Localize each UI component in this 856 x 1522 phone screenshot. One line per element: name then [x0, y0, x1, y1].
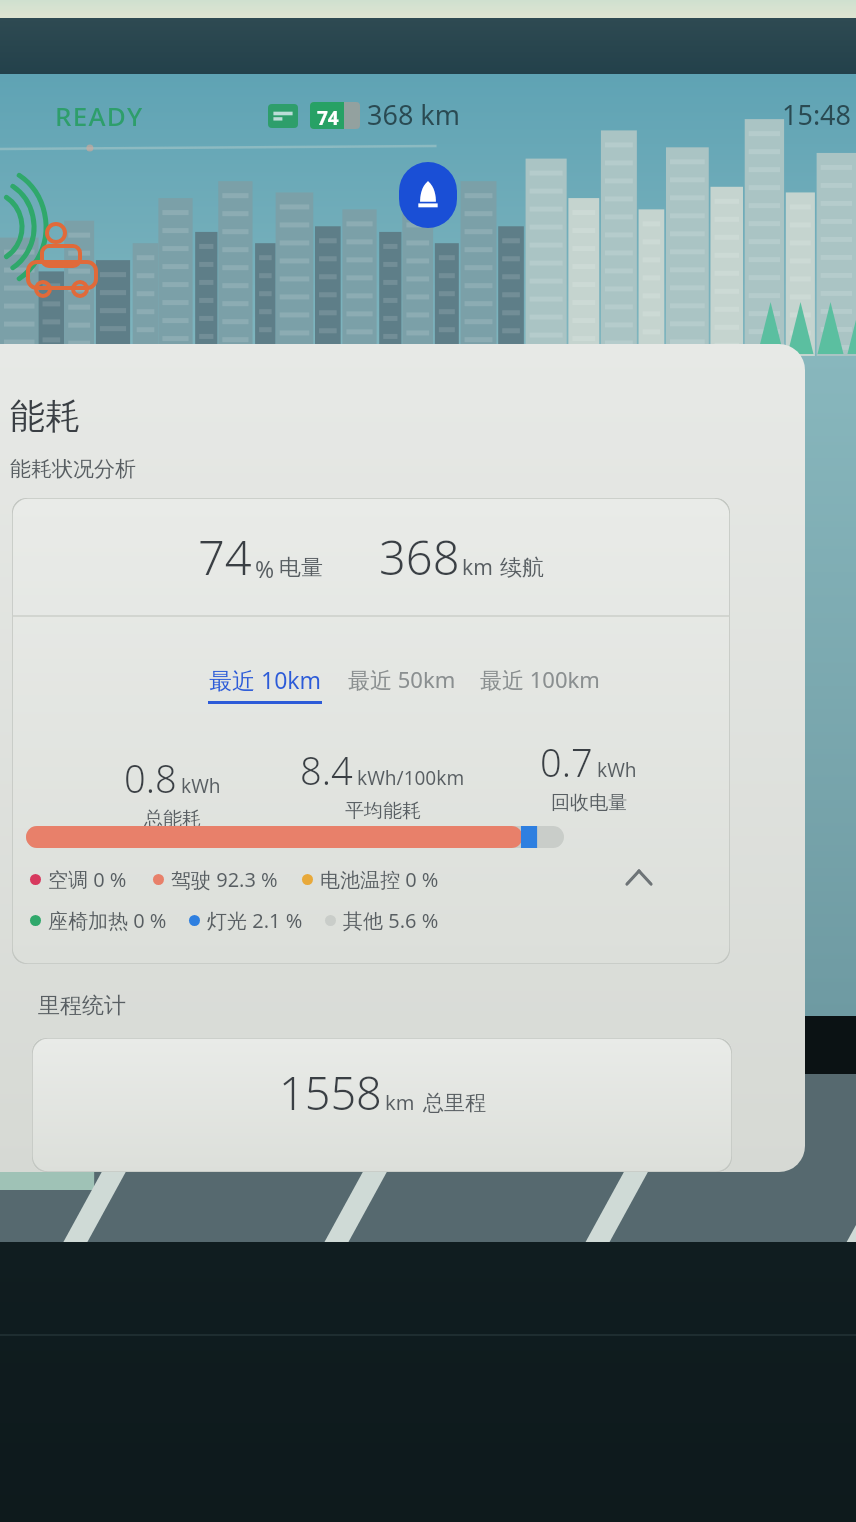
staticText: kWh: [181, 773, 221, 799]
button[interactable]: Current location: [399, 162, 457, 228]
staticText: 其他 5.6 %: [343, 907, 439, 934]
staticText: 74: [317, 105, 339, 129]
staticText: 总里程: [423, 1090, 486, 1116]
staticText: 368 km: [367, 96, 461, 133]
staticText: 15:48: [782, 96, 852, 133]
staticText: 驾驶 92.3 %: [171, 866, 278, 893]
staticText: kWh/100km: [357, 765, 465, 791]
button[interactable]: 最近 10km: [208, 664, 322, 704]
staticText: 1558: [279, 1062, 382, 1123]
staticText: 总能耗: [144, 807, 201, 831]
staticText: 74: [198, 525, 252, 589]
button[interactable]: 最近 100km: [480, 664, 600, 694]
staticText: 续航: [500, 554, 544, 582]
staticText: 最近 100km: [480, 664, 600, 694]
staticText: 最近 10km: [209, 664, 322, 695]
staticText: 里程统计: [38, 992, 126, 1020]
staticText: kWh: [597, 757, 637, 783]
staticText: km: [462, 553, 493, 582]
staticText: 电池温控 0 %: [320, 866, 439, 893]
staticText: %: [255, 553, 275, 584]
staticText: km: [385, 1089, 415, 1116]
staticText: 最近 50km: [348, 664, 456, 694]
staticText: 能耗状况分析: [10, 456, 136, 482]
staticText: 座椅加热 0 %: [48, 907, 167, 934]
staticText: 0.7: [540, 736, 593, 788]
button[interactable]: Collapse details: [612, 850, 666, 904]
staticText: 0.8: [124, 752, 177, 804]
staticText: 灯光 2.1 %: [207, 907, 303, 934]
staticText: 能耗: [10, 394, 80, 438]
staticText: 空调 0 %: [48, 866, 127, 893]
staticText: 电量: [279, 554, 323, 582]
staticText: 平均能耗: [345, 799, 421, 823]
staticText: 8.4: [300, 744, 353, 796]
staticText: 368: [379, 525, 460, 589]
button[interactable]: 最近 50km: [348, 664, 456, 694]
staticText: READY: [55, 98, 144, 133]
staticText: 回收电量: [551, 791, 627, 815]
